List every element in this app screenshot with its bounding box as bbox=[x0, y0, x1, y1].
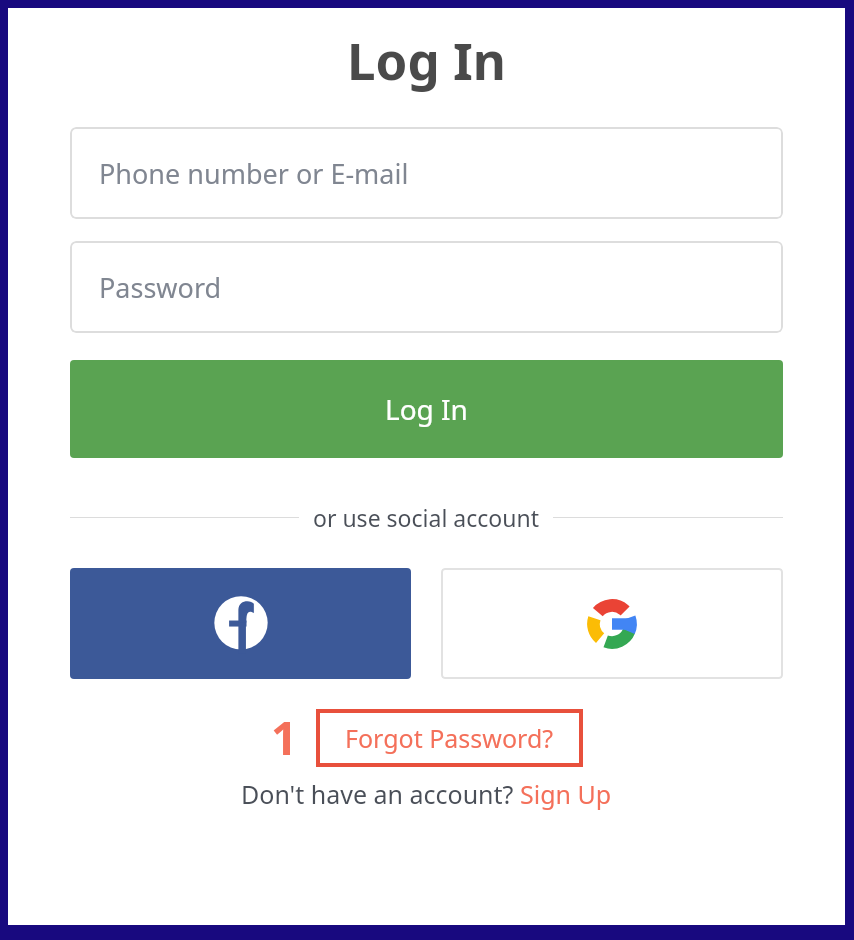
button[interactable]: Sign Up bbox=[520, 777, 612, 811]
staticText: 1 bbox=[271, 706, 298, 769]
staticText: Sign Up bbox=[520, 777, 612, 811]
button[interactable]: Log In bbox=[70, 360, 783, 458]
staticText: Phone number or E-mail bbox=[99, 155, 409, 192]
staticText: Forgot Password? bbox=[345, 721, 554, 755]
staticText: Log In bbox=[385, 390, 468, 428]
staticText: Don't have an account? bbox=[241, 777, 520, 811]
button[interactable]: Forgot Password? bbox=[316, 709, 583, 767]
button[interactable]: Password bbox=[70, 241, 783, 333]
staticText: or use social account bbox=[313, 502, 539, 533]
button[interactable]: Sign in with Google bbox=[441, 568, 783, 679]
staticText: Log In bbox=[347, 25, 506, 94]
button[interactable]: Sign in with Facebook bbox=[70, 568, 411, 679]
staticText: Password bbox=[99, 269, 222, 306]
button[interactable]: Phone number or E-mail bbox=[70, 127, 783, 219]
